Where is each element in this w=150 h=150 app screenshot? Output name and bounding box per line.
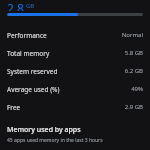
- staticText: 2.9 GB: [124, 103, 143, 111]
- button[interactable]: Free: [0, 98, 150, 116]
- staticText: 5.8 GB: [124, 49, 143, 57]
- staticText: 45 apps used memory in the last 3 hours: [7, 137, 103, 144]
- staticText: 2.8: [7, 0, 24, 11]
- staticText: 49%: [131, 85, 143, 93]
- staticText: Performance: [7, 31, 47, 40]
- staticText: Memory used by apps: [7, 125, 81, 135]
- staticText: GB: [26, 2, 35, 10]
- staticText: 6.2 GB: [124, 67, 143, 75]
- staticText: System reserved: [7, 67, 58, 76]
- button[interactable]: Memory used by apps: [0, 123, 150, 146]
- button[interactable]: Performance: [0, 26, 150, 44]
- staticText: Average used (%): [7, 85, 60, 94]
- staticText: Total memory: [7, 49, 50, 58]
- button[interactable]: System reserved: [0, 62, 150, 80]
- button[interactable]: Total memory: [0, 44, 150, 62]
- staticText: Free: [7, 103, 21, 112]
- staticText: Normal: [121, 31, 143, 39]
- button[interactable]: Average used (%): [0, 80, 150, 98]
